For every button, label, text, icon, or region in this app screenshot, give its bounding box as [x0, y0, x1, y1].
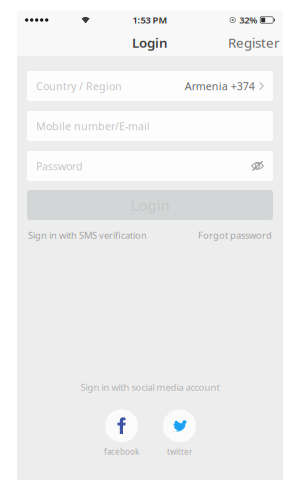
button[interactable]: Sign in with SMS verification: [28, 229, 147, 241]
staticText: Password: [36, 159, 83, 173]
staticText: 1:53 PM: [132, 14, 167, 26]
button[interactable]: Show password: [251, 160, 264, 172]
staticText: Forgot password: [198, 229, 272, 241]
button[interactable]: Register: [228, 34, 280, 51]
staticText: Sign in with social media account: [80, 381, 219, 393]
button[interactable]: twitter: [163, 409, 196, 457]
staticText: Country / Region: [36, 79, 122, 93]
staticText: facebook: [104, 446, 139, 457]
staticText: Register: [228, 34, 280, 51]
staticText: Armenia +374: [185, 79, 255, 93]
button[interactable]: Forgot password: [198, 229, 272, 241]
staticText: 32%: [239, 14, 257, 26]
button[interactable]: Country / Region: [27, 71, 273, 101]
staticText: Mobile number/E-mail: [36, 119, 150, 133]
staticText: Sign in with SMS verification: [28, 229, 147, 241]
button[interactable]: facebook: [104, 409, 139, 457]
button[interactable]: Password: [27, 151, 273, 181]
staticText: twitter: [167, 446, 192, 457]
staticText: Login: [132, 34, 168, 51]
staticText: Login: [130, 195, 169, 215]
button[interactable]: Mobile number/E-mail: [27, 111, 273, 141]
